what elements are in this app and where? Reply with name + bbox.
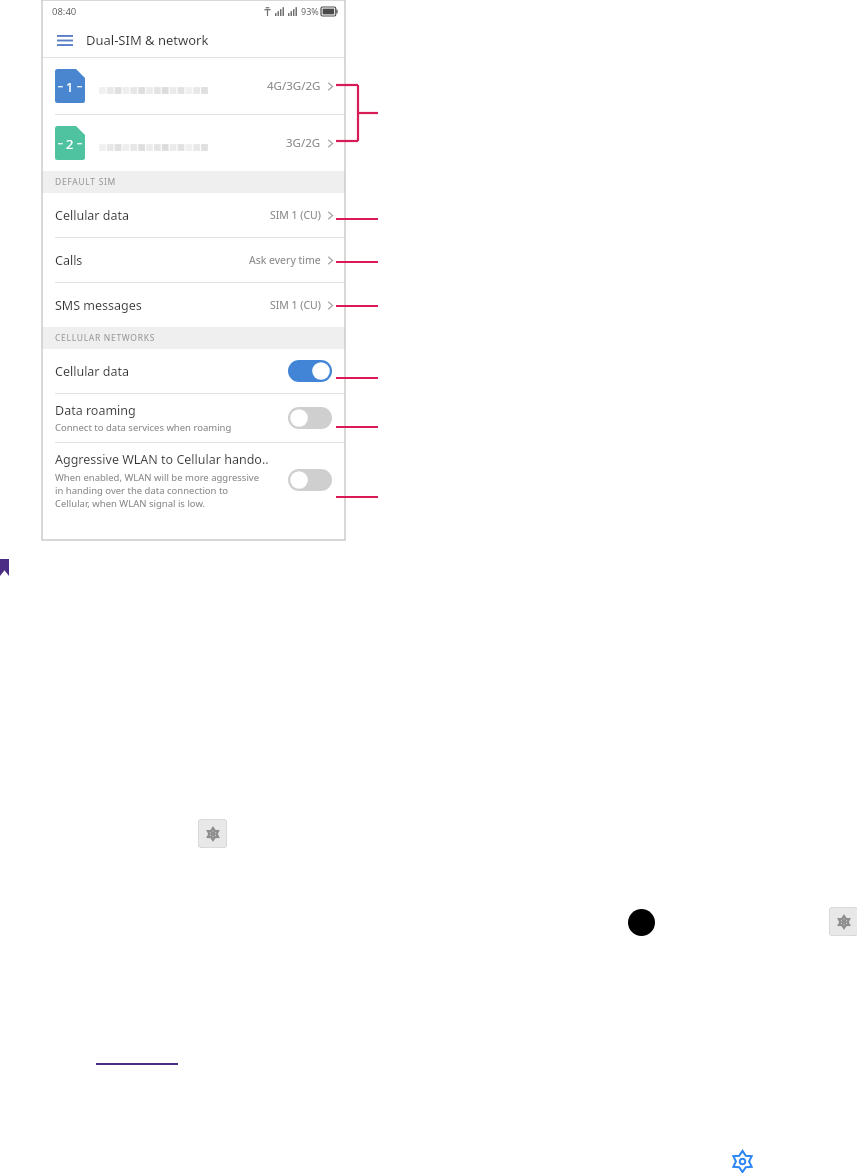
button[interactable]: Aggressive WLAN to Cellular hando.. bbox=[42, 443, 345, 517]
staticText: Aggressive WLAN to Cellular hando.. bbox=[55, 451, 269, 468]
button[interactable]: Toggle on bbox=[288, 360, 332, 382]
staticText: Cellular data bbox=[55, 363, 130, 380]
staticText: Calls bbox=[55, 252, 249, 269]
staticText: SMS messages bbox=[55, 297, 270, 314]
staticText: SIM 1 (CU) bbox=[270, 208, 321, 222]
staticText: 1 bbox=[66, 78, 74, 96]
button[interactable]: Cellular data bbox=[42, 349, 345, 393]
staticText: When enabled, WLAN will be more aggressi… bbox=[55, 471, 260, 484]
button[interactable]: Menu bbox=[52, 27, 78, 53]
staticText: Cellular data bbox=[55, 207, 270, 224]
button[interactable]: 2 bbox=[42, 115, 345, 171]
staticText: CELLULAR NETWORKS bbox=[55, 332, 156, 344]
staticText: Connect to data services when roaming bbox=[55, 421, 232, 434]
button[interactable]: Settings bbox=[731, 1150, 754, 1173]
staticText: Dual-SIM & network bbox=[86, 31, 209, 49]
button[interactable]: Calls bbox=[42, 238, 345, 282]
button[interactable]: Cellular data bbox=[42, 193, 345, 237]
staticText: Data roaming bbox=[55, 402, 136, 419]
staticText: 93% bbox=[301, 5, 319, 17]
staticText: 2 bbox=[66, 135, 74, 153]
staticText: SIM 1 (CU) bbox=[270, 298, 321, 312]
staticText: 4G/3G/2G bbox=[267, 78, 321, 94]
button[interactable]: SMS messages bbox=[42, 283, 345, 327]
button[interactable]: Settings bbox=[198, 819, 227, 848]
button[interactable]: Toggle off bbox=[288, 407, 332, 429]
button[interactable]: 1 bbox=[42, 58, 345, 114]
button[interactable]: Settings bbox=[829, 907, 857, 936]
staticText: 3G/2G bbox=[286, 135, 321, 151]
button[interactable]: Data roaming bbox=[42, 394, 345, 442]
staticText: in handing over the data connection to bbox=[55, 484, 229, 497]
button[interactable]: Toggle off bbox=[288, 469, 332, 491]
staticText: Ask every time bbox=[249, 253, 321, 267]
staticText: DEFAULT SIM bbox=[55, 176, 116, 188]
staticText: 08:40 bbox=[52, 5, 77, 18]
staticText: Cellular, when WLAN signal is low. bbox=[55, 497, 206, 510]
